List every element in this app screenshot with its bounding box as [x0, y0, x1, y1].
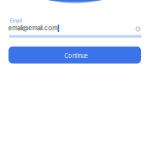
- staticText: email@email.com: [8, 24, 57, 32]
- button[interactable]: Continue: [8, 46, 141, 63]
- staticText: Email: [10, 18, 22, 24]
- button[interactable]: Clear text: [135, 26, 141, 32]
- staticText: Continue: [64, 52, 87, 59]
